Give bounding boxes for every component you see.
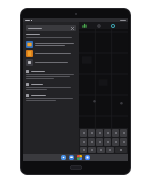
button[interactable]: Key xyxy=(104,129,111,137)
button[interactable]: Home xyxy=(70,165,82,170)
button[interactable]: Key xyxy=(104,138,111,146)
button[interactable] xyxy=(26,40,76,49)
button[interactable]: Key xyxy=(115,147,127,153)
button[interactable]: Messages xyxy=(69,155,74,160)
button[interactable]: Key xyxy=(96,138,103,146)
button[interactable]: Settings xyxy=(97,24,101,28)
button[interactable]: Key xyxy=(80,138,87,146)
button[interactable]: Key xyxy=(106,147,114,153)
button[interactable]: Key xyxy=(120,138,127,146)
button[interactable]: Chart xyxy=(82,23,87,28)
button[interactable] xyxy=(26,25,76,31)
button[interactable]: Key xyxy=(120,129,127,137)
button[interactable]: Key xyxy=(112,129,119,137)
button[interactable] xyxy=(26,70,76,80)
button[interactable]: Key xyxy=(88,138,95,146)
button[interactable]: Key xyxy=(97,147,105,153)
button[interactable] xyxy=(26,94,76,102)
button[interactable] xyxy=(26,49,76,58)
button[interactable]: Photos xyxy=(77,155,82,160)
button[interactable]: Info xyxy=(111,24,115,28)
button[interactable]: Key xyxy=(80,147,87,153)
button[interactable]: Key xyxy=(88,147,96,153)
button[interactable]: Store xyxy=(85,155,90,160)
button[interactable]: Key xyxy=(96,129,103,137)
button[interactable]: Phone xyxy=(61,155,66,160)
button[interactable]: Key xyxy=(80,129,87,137)
button[interactable]: Key xyxy=(112,138,119,146)
button[interactable] xyxy=(26,58,76,67)
button[interactable]: Key xyxy=(88,129,95,137)
button[interactable] xyxy=(26,83,76,91)
